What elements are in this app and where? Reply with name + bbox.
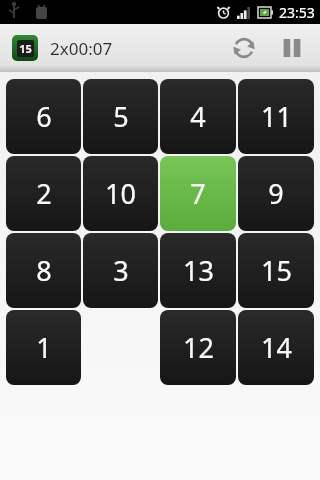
button[interactable]: 1 — [6, 310, 81, 385]
staticText: 14 — [261, 329, 292, 366]
staticText: 5 — [113, 98, 129, 135]
button[interactable]: 5 — [83, 79, 158, 154]
staticText: 10 — [105, 175, 136, 212]
staticText: 11 — [261, 98, 292, 135]
button[interactable]: 15 — [238, 233, 314, 308]
staticText: 15 — [261, 252, 292, 289]
button[interactable]: Restart — [220, 24, 268, 72]
button[interactable]: 7 — [160, 156, 236, 231]
button[interactable]: 2 — [6, 156, 81, 231]
button[interactable]: 9 — [238, 156, 314, 231]
button[interactable]: 15 — [12, 35, 113, 61]
staticText: 3 — [113, 252, 129, 289]
staticText: 8 — [36, 252, 52, 289]
staticText: 15 — [19, 41, 32, 56]
staticText: 2 — [36, 175, 52, 212]
button[interactable]: 14 — [238, 310, 314, 385]
staticText: 13 — [183, 252, 214, 289]
button[interactable]: 8 — [6, 233, 81, 308]
button[interactable]: 11 — [238, 79, 314, 154]
button[interactable]: 4 — [160, 79, 236, 154]
staticText: 23:53 — [279, 3, 315, 22]
staticText: 7 — [190, 175, 206, 212]
staticText: 2x00:07 — [50, 37, 113, 60]
button[interactable]: 3 — [83, 233, 158, 308]
button[interactable]: 12 — [160, 310, 236, 385]
staticText: 6 — [36, 98, 52, 135]
button[interactable]: 10 — [83, 156, 158, 231]
staticText: 1 — [36, 329, 52, 366]
button[interactable]: 13 — [160, 233, 236, 308]
button[interactable]: Pause — [268, 24, 316, 72]
button[interactable]: 6 — [6, 79, 81, 154]
staticText: 9 — [268, 175, 284, 212]
staticText: 4 — [190, 98, 206, 135]
staticText: 12 — [183, 329, 214, 366]
